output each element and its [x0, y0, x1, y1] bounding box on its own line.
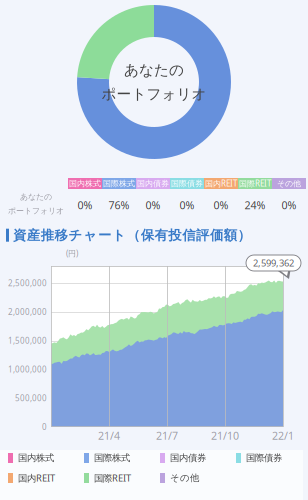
staticText: ポートフォリオ: [8, 206, 64, 216]
staticText: 国内株式: [69, 179, 101, 188]
staticText: 国際REIT: [239, 178, 271, 189]
staticText: 21/10: [211, 428, 239, 443]
staticText: 0%: [179, 198, 194, 212]
staticText: 1,000,000: [8, 364, 47, 375]
staticText: ポートフォリオ: [101, 85, 206, 103]
staticText: 500,000: [15, 393, 47, 403]
staticText: 国際株式: [94, 452, 130, 464]
staticText: 2,500,000: [8, 278, 47, 288]
staticText: 国内株式: [18, 452, 54, 464]
staticText: 国際株式: [103, 179, 135, 188]
staticText: 0%: [281, 198, 296, 212]
staticText: 22/1: [272, 428, 294, 443]
staticText: 1,500,000: [8, 335, 47, 346]
staticText: あなたの: [20, 192, 52, 202]
staticText: あなたの: [124, 61, 184, 79]
staticText: 国内債券: [137, 179, 169, 188]
staticText: その他: [170, 472, 199, 484]
staticText: 0%: [213, 198, 228, 212]
staticText: 国内REIT: [18, 472, 55, 484]
staticText: 資産推移チャート（保有投信評価額）: [13, 227, 251, 243]
staticText: 0%: [145, 198, 160, 212]
staticText: 2,000,000: [8, 307, 47, 317]
staticText: 国際債券: [171, 179, 203, 188]
staticText: 国内債券: [170, 452, 206, 464]
staticText: 21/7: [156, 428, 178, 443]
staticText: 0%: [77, 198, 92, 212]
staticText: 76%: [108, 198, 129, 212]
staticText: 国際REIT: [94, 472, 131, 484]
staticText: (円): [66, 248, 78, 259]
staticText: その他: [277, 179, 301, 188]
staticText: 24%: [244, 198, 265, 212]
staticText: 2,599,362: [253, 257, 294, 269]
staticText: 21/4: [98, 428, 120, 443]
staticText: 0: [42, 422, 47, 432]
staticText: 国際債券: [246, 452, 282, 464]
staticText: 国内REIT: [205, 178, 237, 189]
